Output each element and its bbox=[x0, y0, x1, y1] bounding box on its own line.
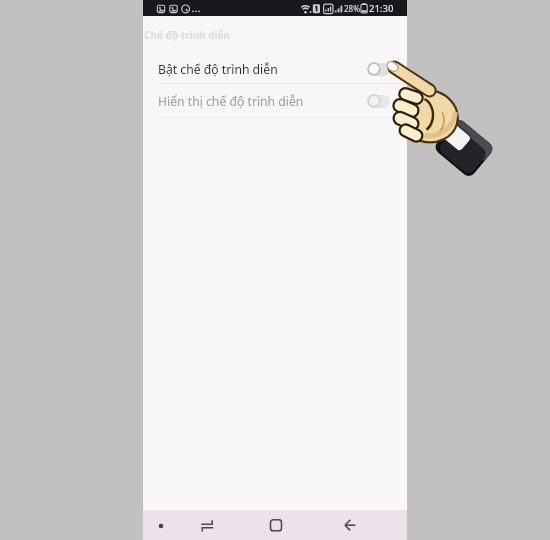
button[interactable] bbox=[195, 513, 219, 537]
staticText: 28% bbox=[344, 3, 360, 14]
button[interactable]: Bật chế độ trình diễn bbox=[143, 55, 407, 83]
button[interactable] bbox=[264, 513, 288, 537]
staticText: 21:30 bbox=[369, 2, 394, 15]
button[interactable] bbox=[338, 513, 362, 537]
button[interactable]: Hiển thị chế độ trình diễn bbox=[143, 86, 407, 116]
staticText: Bật chế độ trình diễn bbox=[158, 61, 278, 78]
staticText: Chế độ trình diễn bbox=[144, 28, 230, 42]
button[interactable] bbox=[157, 522, 165, 530]
staticText: Hiển thị chế độ trình diễn bbox=[158, 93, 304, 110]
